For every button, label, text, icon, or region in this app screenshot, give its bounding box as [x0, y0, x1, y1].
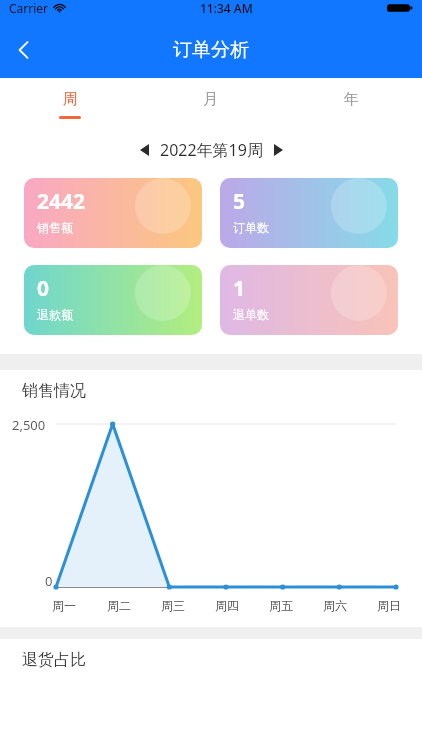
staticText: 11:34 AM — [200, 0, 253, 16]
staticText: 1 — [233, 274, 246, 303]
staticText: 2022年第19周 — [160, 139, 263, 161]
staticText: 周三 — [161, 598, 185, 613]
button[interactable]: 周 — [0, 78, 140, 130]
staticText: 2442 — [37, 187, 86, 216]
staticText: 周日 — [377, 598, 401, 613]
button[interactable]: 月 — [140, 78, 281, 130]
button[interactable]: 5 — [220, 178, 398, 248]
button[interactable]: 年 — [281, 78, 422, 130]
staticText: 周一 — [52, 598, 76, 613]
staticText: 月 — [203, 90, 218, 109]
staticText: 周五 — [269, 598, 293, 613]
staticText: 退款额 — [37, 307, 73, 322]
staticText: 销售额 — [37, 220, 73, 235]
staticText: 0 — [37, 274, 50, 303]
button[interactable]: 2442 — [24, 178, 202, 248]
staticText: 周六 — [323, 598, 347, 613]
staticText: 周 — [63, 90, 78, 109]
staticText: 周二 — [107, 598, 131, 613]
button[interactable]: Back — [0, 26, 48, 74]
staticText: 周四 — [215, 598, 239, 613]
staticText: 订单数 — [233, 220, 269, 235]
button[interactable]: 2022年第19周 — [0, 130, 422, 170]
staticText: 订单分析 — [173, 38, 249, 62]
button[interactable]: 0 — [24, 265, 202, 335]
button[interactable]: 1 — [220, 265, 398, 335]
staticText: 2,500 — [12, 416, 46, 434]
staticText: 0 — [45, 572, 53, 590]
staticText: Carrier — [9, 0, 49, 16]
staticText: 退货占比 — [22, 650, 86, 670]
staticText: 5 — [233, 187, 246, 216]
staticText: 年 — [344, 90, 359, 109]
staticText: 退单数 — [233, 307, 269, 322]
staticText: 销售情况 — [22, 381, 86, 401]
